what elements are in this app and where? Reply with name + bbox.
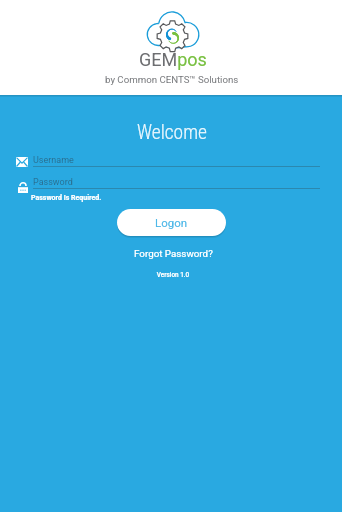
button[interactable]: Forgot Password?	[128, 246, 219, 261]
button[interactable]: Logon	[117, 209, 226, 236]
staticText: Username	[33, 155, 74, 166]
staticText: Password	[33, 177, 73, 188]
staticText: by Common CENTS™ Solutions	[105, 74, 239, 85]
staticText: Logon	[155, 216, 188, 229]
staticText: GEMpos	[139, 49, 207, 70]
other: Password	[18, 182, 28, 193]
staticText: Welcome	[1, 121, 342, 144]
staticText: Forgot Password?	[134, 248, 213, 259]
staticText: Password Is Required.	[31, 194, 102, 202]
staticText: Version 1.0	[2, 271, 342, 279]
other: Username	[16, 157, 28, 167]
